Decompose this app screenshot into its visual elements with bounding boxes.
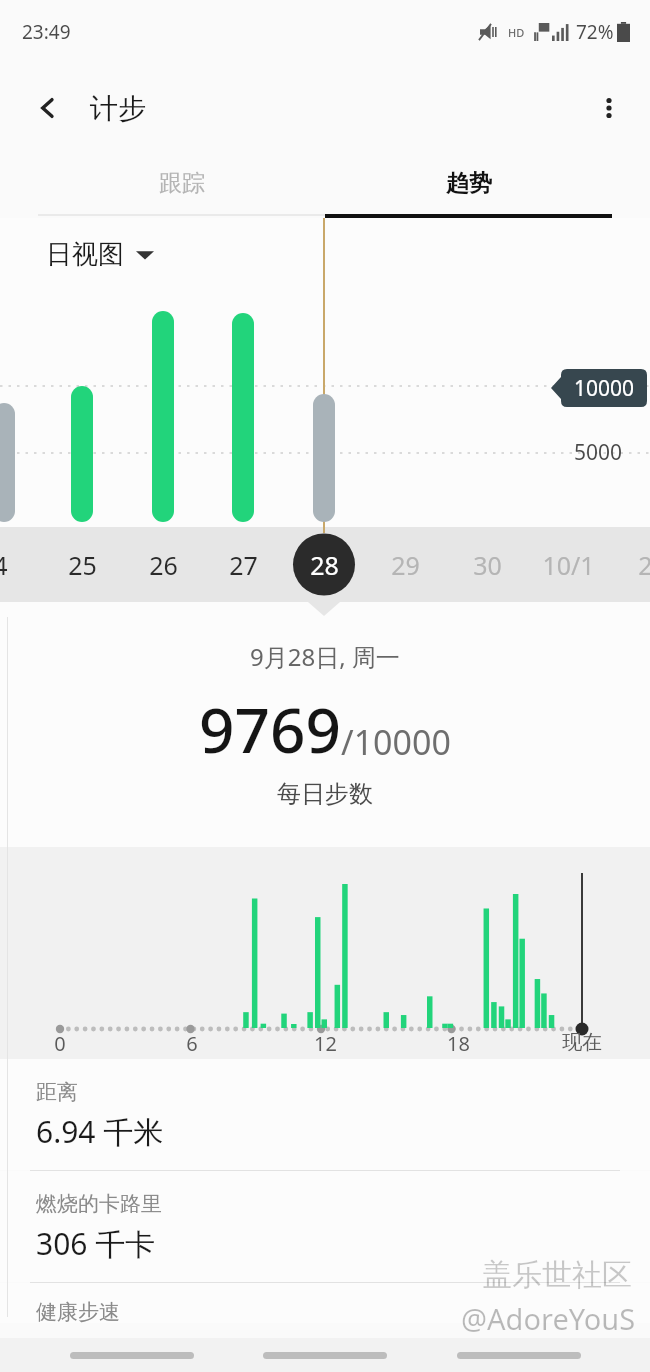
button[interactable]: 日视图 [46, 238, 154, 271]
button[interactable]: 27 [203, 527, 283, 602]
staticText: 4 [0, 548, 8, 582]
button[interactable] [457, 1340, 581, 1370]
staticText: 每日步数 [277, 779, 373, 809]
staticText: 健康步速 [36, 1299, 120, 1323]
button[interactable]: Back [26, 86, 70, 130]
staticText: 6 [186, 1030, 198, 1057]
staticText: HD [508, 25, 525, 40]
staticText: /10000 [341, 719, 451, 765]
staticText: 现在 [562, 1030, 602, 1055]
staticText: 306 千卡 [36, 1223, 156, 1264]
staticText: 0 [54, 1030, 66, 1057]
staticText: 29 [391, 548, 420, 582]
button[interactable]: 26 [123, 527, 203, 602]
staticText: 盖乐世社区 [482, 1256, 632, 1294]
staticText: 23:49 [22, 19, 71, 45]
staticText: 72% [576, 19, 614, 45]
button[interactable]: 30 [447, 527, 527, 602]
staticText: 30 [473, 548, 502, 582]
staticText: 9769 [199, 687, 341, 771]
staticText: 27 [229, 548, 258, 582]
staticText: 日视图 [46, 238, 124, 271]
staticText: 28 [310, 548, 339, 582]
staticText: 10000 [574, 374, 635, 403]
button[interactable]: 距离 [0, 1059, 650, 1170]
staticText: 计步 [90, 91, 146, 126]
staticText: 18 [447, 1030, 470, 1057]
button[interactable]: More options [586, 85, 632, 131]
staticText: @AdoreYouS [461, 1299, 636, 1338]
staticText: 26 [149, 548, 178, 582]
staticText: 12 [314, 1030, 337, 1057]
button[interactable]: 2 [605, 527, 650, 602]
staticText: 2 [638, 548, 650, 582]
staticText: 燃烧的卡路里 [36, 1191, 162, 1217]
staticText: 9月28日, 周一 [250, 640, 400, 673]
staticText: 5000 [574, 438, 623, 467]
staticText: 跟踪 [159, 169, 205, 198]
button[interactable]: 10/1 [528, 527, 608, 602]
button[interactable]: 跟踪 [38, 152, 325, 214]
button[interactable]: 28 [284, 527, 364, 602]
button[interactable]: 4 [0, 527, 40, 602]
button[interactable]: 燃烧的卡路里 [0, 1171, 650, 1282]
button[interactable]: 29 [365, 527, 445, 602]
button[interactable]: 25 [42, 527, 122, 602]
button[interactable]: 健康步速 [0, 1283, 650, 1323]
staticText: 距离 [36, 1079, 78, 1105]
button[interactable] [263, 1340, 387, 1370]
staticText: 10/1 [542, 548, 595, 582]
staticText: 25 [68, 548, 97, 582]
staticText: 趋势 [446, 169, 492, 198]
button[interactable] [70, 1340, 194, 1370]
button[interactable]: 趋势 [325, 152, 612, 214]
staticText: 6.94 千米 [36, 1111, 164, 1152]
